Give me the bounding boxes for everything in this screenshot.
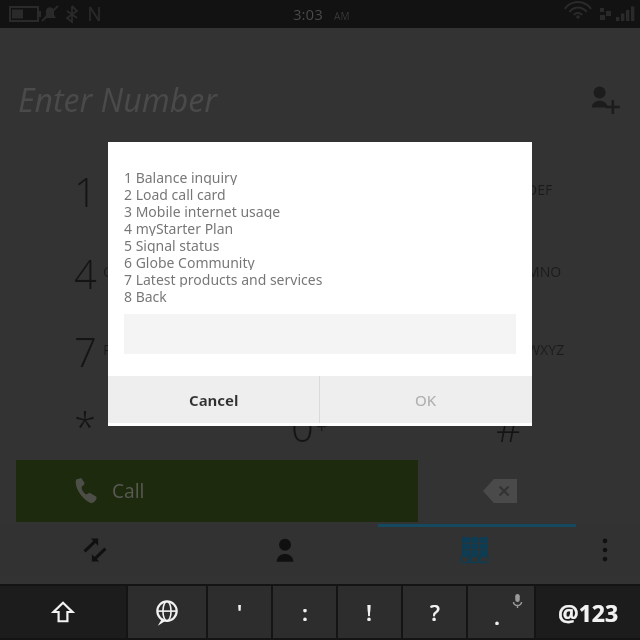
button[interactable]: Dialpad xyxy=(380,524,570,576)
button[interactable]: 4 xyxy=(35,238,135,308)
staticText: 5 xyxy=(291,246,314,300)
staticText: Call xyxy=(112,478,145,504)
staticText: * xyxy=(74,399,97,453)
button[interactable]: Backspace xyxy=(470,466,530,516)
staticText: + xyxy=(316,412,328,439)
staticText: 1 xyxy=(74,164,97,218)
staticText: DEF xyxy=(527,180,553,199)
staticText: 9 xyxy=(498,324,521,378)
staticText: 2 Load call card xyxy=(124,185,226,202)
staticText: 8 Back xyxy=(124,287,167,304)
button[interactable]: Call xyxy=(16,460,418,522)
staticText: OK xyxy=(415,390,437,410)
button[interactable]: Shift xyxy=(0,586,126,638)
staticText: 0 xyxy=(291,399,314,453)
staticText: : xyxy=(302,597,308,627)
button[interactable]: 8 xyxy=(252,316,352,386)
staticText: AM xyxy=(334,9,350,23)
button[interactable]: Cancel xyxy=(108,376,319,423)
button[interactable]: ? xyxy=(403,586,466,638)
button[interactable]: More options xyxy=(570,524,640,576)
button[interactable]: ' xyxy=(208,586,271,638)
staticText: 3:03 xyxy=(293,4,323,24)
staticText: 4 xyxy=(74,246,97,300)
staticText: GHI xyxy=(103,262,129,281)
button[interactable]: . xyxy=(468,586,534,638)
staticText: 4 myStarter Plan xyxy=(124,219,234,236)
button[interactable]: 2 xyxy=(252,156,352,226)
button[interactable]: # xyxy=(459,391,559,461)
button[interactable]: 0 xyxy=(252,391,352,461)
staticText: PQRS xyxy=(103,340,139,359)
staticText: 5 Signal status xyxy=(124,236,220,253)
staticText: ? xyxy=(430,597,440,627)
staticText: 6 Globe Community xyxy=(124,253,255,270)
staticText: 7 xyxy=(74,324,97,378)
button[interactable]: Call history xyxy=(0,524,190,576)
staticText: JKL xyxy=(320,262,340,281)
button[interactable]: ! xyxy=(338,586,401,638)
button[interactable]: Add contact xyxy=(580,76,624,120)
button[interactable]: 1 xyxy=(35,156,135,226)
button[interactable]: : xyxy=(273,586,336,638)
staticText: ! xyxy=(366,597,373,627)
staticText: WXYZ xyxy=(527,340,565,359)
staticText: @123 xyxy=(558,597,619,628)
staticText: 7 Latest products and services xyxy=(124,270,323,287)
button[interactable]: Contacts xyxy=(190,524,380,576)
button[interactable]: OK xyxy=(320,376,532,423)
button[interactable]: Change language xyxy=(128,586,206,638)
button[interactable]: 6 xyxy=(459,238,559,308)
staticText: Enter Number xyxy=(18,78,218,122)
button[interactable]: * xyxy=(35,391,135,461)
staticText: Cancel xyxy=(189,390,239,410)
staticText: 8 xyxy=(291,324,314,378)
staticText: . xyxy=(494,601,500,631)
staticText: 1 Balance inquiry xyxy=(124,168,238,185)
staticText: MNO xyxy=(527,262,562,281)
button[interactable]: 7 xyxy=(35,316,135,386)
button[interactable]: 3 xyxy=(459,156,559,226)
staticText: 3 Mobile internet usage xyxy=(124,202,281,219)
button[interactable]: @123 xyxy=(536,586,640,638)
staticText: TUV xyxy=(320,340,347,359)
staticText: # xyxy=(496,399,522,453)
button[interactable]: 5 xyxy=(252,238,352,308)
button[interactable]: 9 xyxy=(459,316,559,386)
staticText: ' xyxy=(237,597,243,627)
